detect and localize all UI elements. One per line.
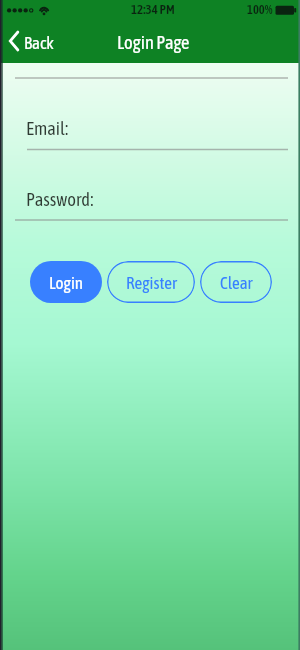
- staticText: Register: [126, 273, 177, 292]
- staticText: 100%: [247, 2, 273, 16]
- staticText: Login: [49, 273, 84, 292]
- staticText: 12:34 PM: [131, 2, 175, 17]
- staticText: Login Page: [117, 32, 190, 53]
- button[interactable]: Email:: [15, 78, 288, 150]
- staticText: Email:: [26, 118, 69, 139]
- staticText: Back: [24, 33, 54, 52]
- button[interactable]: Clear: [200, 261, 272, 303]
- staticText: Password:: [26, 189, 94, 210]
- button[interactable]: Login: [30, 261, 102, 303]
- button[interactable]: Register: [107, 261, 195, 303]
- button[interactable]: Back: [4, 24, 60, 62]
- staticText: Clear: [220, 273, 253, 292]
- button[interactable]: Password:: [15, 150, 288, 221]
